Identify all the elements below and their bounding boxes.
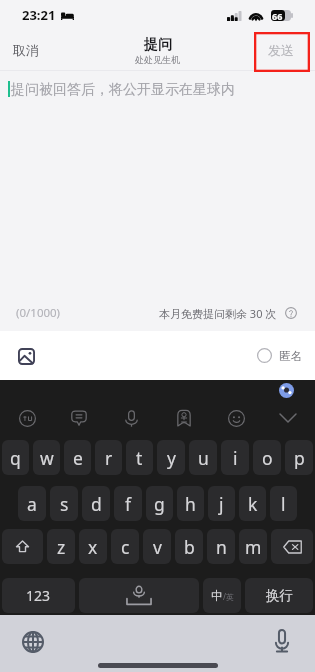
staticText: u <box>198 446 209 470</box>
button[interactable]: x <box>79 529 107 564</box>
button[interactable]: Shift <box>2 529 43 564</box>
staticText: k <box>248 492 258 516</box>
button[interactable]: j <box>208 486 235 521</box>
staticText: 匿名 <box>279 349 302 363</box>
staticText: 处处见生机 <box>135 54 180 65</box>
button[interactable]: Add image <box>8 338 44 374</box>
staticText: i <box>233 446 238 470</box>
staticText: 换行 <box>266 587 293 604</box>
button[interactable]: g <box>146 486 173 521</box>
staticText: e <box>73 446 83 470</box>
button[interactable]: k <box>239 486 266 521</box>
staticText: t <box>136 446 143 470</box>
button[interactable]: Voice input <box>274 629 290 653</box>
staticText: x <box>88 535 98 559</box>
button[interactable]: clip <box>169 403 199 433</box>
button[interactable]: t <box>126 440 153 475</box>
button[interactable]: w <box>33 440 60 475</box>
button[interactable]: s <box>50 486 78 521</box>
button[interactable]: u <box>189 440 217 475</box>
staticText: d <box>91 492 102 516</box>
button[interactable]: f <box>114 486 142 521</box>
button[interactable]: Space <box>79 578 199 613</box>
button[interactable]: z <box>47 529 75 564</box>
staticText: r <box>105 446 113 470</box>
button[interactable]: mic <box>116 403 146 433</box>
staticText: 123 <box>26 586 51 605</box>
staticText: n <box>216 535 227 559</box>
staticText: w <box>40 446 54 470</box>
button[interactable]: 换行 <box>245 578 313 613</box>
staticText: 提问 <box>144 36 172 54</box>
button[interactable]: Backspace <box>271 529 313 564</box>
staticText: g <box>154 492 165 516</box>
staticText: m <box>245 535 262 559</box>
button[interactable]: Keyboard logo <box>279 383 294 398</box>
button[interactable]: Help <box>283 305 299 321</box>
staticText: c <box>121 535 130 559</box>
button[interactable]: q <box>2 440 29 475</box>
staticText: v <box>153 535 162 559</box>
staticText: q <box>10 446 21 470</box>
staticText: (0/1000) <box>16 305 61 321</box>
button[interactable]: n <box>207 529 235 564</box>
staticText: 中 <box>211 588 223 603</box>
staticText: l <box>281 492 286 516</box>
button[interactable]: zh <box>12 403 42 433</box>
staticText: s <box>60 492 69 516</box>
button[interactable]: e <box>64 440 91 475</box>
button[interactable]: 取消 <box>0 30 52 70</box>
button[interactable]: l <box>270 486 297 521</box>
button[interactable]: o <box>253 440 281 475</box>
button[interactable]: 匿名 <box>244 340 315 371</box>
button[interactable]: v <box>143 529 171 564</box>
staticText: p <box>294 446 305 470</box>
button[interactable]: i <box>221 440 249 475</box>
staticText: 提问被回答后，将公开显示在星球内 <box>11 81 235 99</box>
staticText: h <box>185 492 196 516</box>
button[interactable]: emoji <box>221 403 251 433</box>
button[interactable]: m <box>239 529 267 564</box>
staticText: b <box>184 535 195 559</box>
staticText: 发送 <box>268 42 294 58</box>
staticText: /英 <box>223 591 234 602</box>
staticText: z <box>57 535 66 559</box>
staticText: f <box>125 492 132 516</box>
button[interactable]: b <box>175 529 203 564</box>
button[interactable]: down <box>273 403 303 433</box>
button[interactable]: text <box>64 403 94 433</box>
staticText: o <box>262 446 273 470</box>
staticText: 取消 <box>13 42 39 58</box>
button[interactable]: y <box>157 440 185 475</box>
staticText: 本月免费提问剩余 30 次 <box>159 306 277 321</box>
button[interactable]: 123 <box>2 578 75 613</box>
button[interactable]: Change language <box>22 631 44 653</box>
button[interactable]: 中 <box>203 578 241 613</box>
button[interactable]: p <box>285 440 313 475</box>
button[interactable]: d <box>82 486 110 521</box>
staticText: y <box>167 446 176 470</box>
button[interactable]: r <box>95 440 122 475</box>
button[interactable]: a <box>18 486 46 521</box>
staticText: 66 <box>272 10 283 21</box>
button[interactable]: h <box>177 486 204 521</box>
button[interactable]: 发送 <box>253 30 309 70</box>
staticText: j <box>219 492 224 516</box>
staticText: a <box>27 492 37 516</box>
button[interactable]: c <box>111 529 139 564</box>
staticText: 23:21 <box>22 6 56 24</box>
